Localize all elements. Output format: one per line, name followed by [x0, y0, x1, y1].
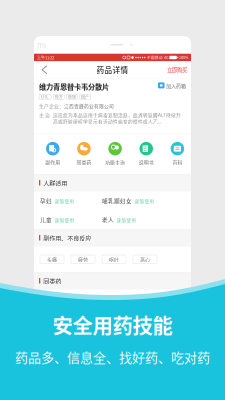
staticText: 恶心 — [140, 256, 150, 263]
staticText: 百科 — [172, 158, 182, 165]
staticText: OTC — [41, 94, 49, 100]
staticText: 副作用 — [45, 158, 60, 165]
staticText: 100% — [179, 55, 188, 60]
staticText: 功能主治 — [105, 158, 125, 165]
staticText: 同类药 — [76, 158, 91, 165]
button[interactable]: 说明书 — [133, 142, 159, 165]
staticText: 哺乳期妇女 — [102, 197, 132, 205]
staticText: 处方 — [55, 94, 63, 100]
button[interactable]: 功能主治 — [102, 142, 128, 165]
staticText: 头痛 — [47, 256, 57, 263]
staticText: 上午11:22 — [37, 55, 54, 60]
staticText: 谨慎使用 — [134, 197, 154, 204]
staticText: 儿童 — [40, 216, 52, 224]
staticText: 说明书 — [139, 158, 154, 165]
button[interactable]: 疲劳 — [71, 255, 95, 263]
staticText: 副作用、不良反应 — [43, 233, 91, 242]
staticText: 医保 — [68, 94, 76, 100]
staticText: 中国移动 4G — [147, 55, 168, 60]
staticText: 维力青恩替卡韦分散片 — [39, 81, 109, 92]
button[interactable]: 恶心 — [133, 255, 157, 263]
staticText: 同类药 — [43, 276, 61, 285]
staticText: 呕吐 — [109, 256, 119, 263]
staticText: 生产企业： — [39, 102, 64, 109]
staticText: 疲劳 — [78, 256, 88, 263]
button[interactable]: 同类药 — [71, 142, 97, 165]
button[interactable]: 呕吐 — [102, 255, 126, 263]
staticText: 立即购买 — [167, 66, 187, 74]
staticText: 谨慎使用 — [54, 197, 74, 204]
staticText: 孕妇 — [40, 197, 52, 205]
staticText: 人群适用 — [43, 178, 67, 187]
staticText: 老人 — [102, 216, 114, 224]
staticText: 药品详情 — [96, 64, 128, 75]
staticText: 国产 — [81, 94, 89, 100]
staticText: 加入药箱 — [166, 82, 186, 89]
button[interactable]: 百科 — [164, 142, 190, 165]
staticText: 药品多、信息全、找好药、吃对药 — [15, 347, 210, 366]
staticText: 阿公页替卡韦分散片 — [61, 297, 106, 304]
staticText: 安全用药技能 — [52, 310, 172, 339]
staticText: 江西青峰药业有限公司 — [64, 102, 114, 109]
button[interactable]: 头痛 — [40, 255, 64, 263]
staticText: 谨慎使用 — [54, 216, 74, 223]
button[interactable]: 返回 — [38, 63, 49, 77]
button[interactable]: 加入药箱 — [158, 81, 186, 89]
staticText: 谨慎使用 — [116, 216, 136, 223]
button[interactable]: 副作用 — [40, 142, 66, 165]
button[interactable]: 立即购买 — [167, 63, 187, 77]
staticText: 适应症为本品适用于病毒复制活跃，血清转氨酶ALT持续升高或肝脏组织学显示有活动性… — [53, 111, 181, 125]
staticText: 主 治 — [39, 111, 50, 118]
staticText: mi — [37, 39, 46, 50]
